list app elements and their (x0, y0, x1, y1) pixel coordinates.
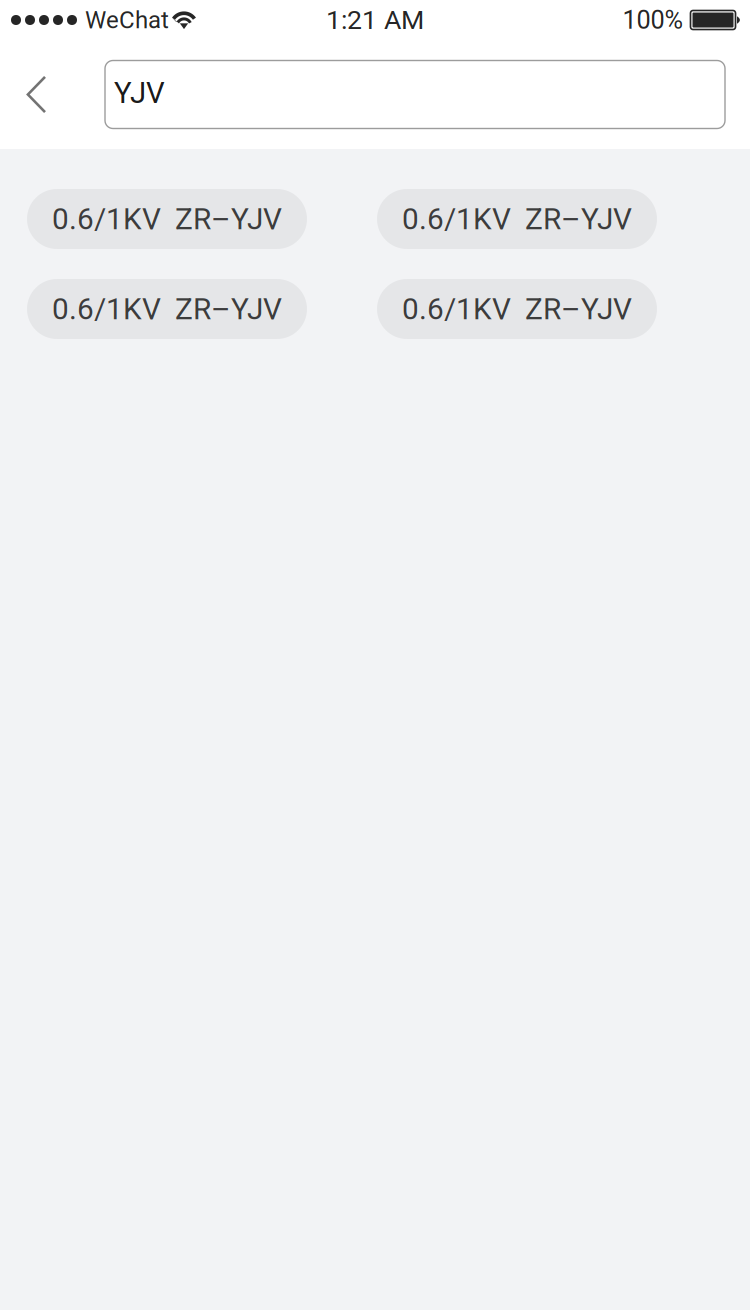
staticText: WeChat (85, 6, 169, 34)
staticText: YJV (114, 76, 165, 110)
button[interactable]: Back (0, 40, 73, 149)
button[interactable]: YJV (105, 60, 725, 128)
staticText: 0.6/1KV ZR–YJV (52, 292, 282, 326)
staticText: 0.6/1KV ZR–YJV (402, 292, 632, 326)
staticText: 1:21 AM (326, 4, 424, 36)
staticText: 0.6/1KV ZR–YJV (52, 202, 282, 236)
staticText: 0.6/1KV ZR–YJV (402, 202, 632, 236)
button[interactable]: 0.6/1KV ZR–YJV (27, 279, 307, 339)
button[interactable]: 0.6/1KV ZR–YJV (377, 279, 657, 339)
staticText: 100% (622, 5, 683, 35)
button[interactable]: 0.6/1KV ZR–YJV (27, 189, 307, 249)
button[interactable]: 0.6/1KV ZR–YJV (377, 189, 657, 249)
